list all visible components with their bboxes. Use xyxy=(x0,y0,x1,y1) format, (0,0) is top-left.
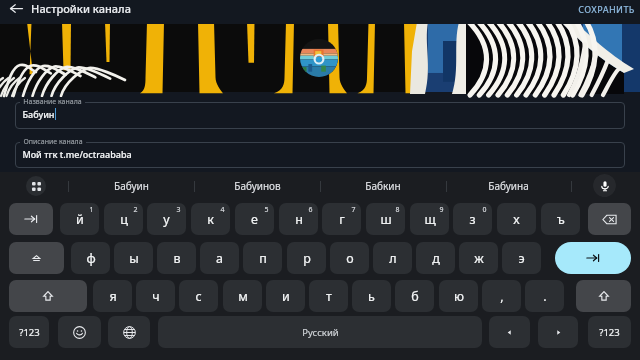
button[interactable]: Enter xyxy=(555,242,631,274)
button[interactable]: г xyxy=(322,203,361,235)
button[interactable]: Tab xyxy=(9,203,53,235)
staticText: д xyxy=(432,250,440,267)
staticText: к xyxy=(207,211,214,228)
staticText: Бабуина xyxy=(488,179,529,193)
button[interactable]: з xyxy=(453,203,492,235)
staticText: Описание канала xyxy=(23,137,83,147)
button[interactable]: ?123 xyxy=(9,316,49,348)
staticText: Бабкин xyxy=(365,179,401,193)
staticText: ь xyxy=(368,288,375,305)
button[interactable]: Change channel photo xyxy=(300,39,338,77)
button[interactable] xyxy=(15,142,625,168)
button[interactable]: с xyxy=(179,280,218,312)
button[interactable]: я xyxy=(93,280,132,312)
staticText: р xyxy=(303,250,311,267)
button[interactable]: х xyxy=(497,203,536,235)
button[interactable]: ь xyxy=(352,280,391,312)
button[interactable]: ы xyxy=(114,242,153,274)
staticText: Русский xyxy=(302,326,339,339)
button[interactable]: ж xyxy=(459,242,498,274)
staticText: з xyxy=(469,211,476,228)
staticText: с xyxy=(195,288,202,305)
staticText: н xyxy=(295,211,303,228)
button[interactable]: в xyxy=(157,242,196,274)
button[interactable]: . xyxy=(525,280,564,312)
button[interactable]: щ xyxy=(410,203,449,235)
button[interactable]: Shift xyxy=(576,280,631,312)
button[interactable]: ю xyxy=(439,280,478,312)
staticText: ч xyxy=(152,288,160,305)
button[interactable]: Бабуинов xyxy=(194,172,320,200)
staticText: Название канала xyxy=(23,97,82,107)
staticText: ю xyxy=(454,288,464,305)
button[interactable]: е xyxy=(235,203,274,235)
button[interactable]: СОХРАНИТЬ xyxy=(572,0,640,19)
staticText: СОХРАНИТЬ xyxy=(578,3,635,15)
button[interactable]: ч xyxy=(136,280,175,312)
button[interactable]: Emoji xyxy=(58,316,101,348)
staticText: 0 xyxy=(482,205,487,215)
button[interactable]: л xyxy=(373,242,412,274)
staticText: в xyxy=(173,250,181,267)
button[interactable]: Бабкин xyxy=(320,172,446,200)
staticText: Бабуинов xyxy=(234,179,281,193)
button[interactable]: Move cursor right xyxy=(538,316,578,348)
button[interactable]: Channel cover xyxy=(0,24,640,92)
staticText: е xyxy=(251,211,258,228)
button[interactable]: Voice input xyxy=(593,174,616,197)
button[interactable]: ъ xyxy=(541,203,580,235)
button[interactable]: ф xyxy=(71,242,110,274)
staticText: 3 xyxy=(176,205,181,215)
button[interactable]: ц xyxy=(104,203,143,235)
staticText: л xyxy=(389,250,397,267)
staticText: ж xyxy=(474,250,484,267)
staticText: ы xyxy=(129,250,139,267)
button[interactable]: б xyxy=(395,280,434,312)
button[interactable]: о xyxy=(330,242,369,274)
staticText: г xyxy=(339,211,345,228)
button[interactable]: к xyxy=(191,203,230,235)
staticText: 4 xyxy=(220,205,225,215)
button[interactable]: Бабуин xyxy=(68,172,194,200)
button[interactable] xyxy=(15,102,625,129)
button[interactable]: Switch language xyxy=(108,316,150,348)
button[interactable]: Clipboard xyxy=(25,175,47,197)
button[interactable]: й xyxy=(60,203,99,235)
button[interactable]: ?123 xyxy=(588,316,631,348)
staticText: б xyxy=(411,288,419,305)
staticText: , xyxy=(500,288,504,305)
button[interactable]: п xyxy=(243,242,282,274)
button[interactable]: а xyxy=(200,242,239,274)
staticText: 7 xyxy=(351,205,356,215)
button[interactable]: Backspace xyxy=(588,203,631,235)
button[interactable]: Русский xyxy=(158,316,482,348)
staticText: Бабуин xyxy=(22,108,55,120)
button[interactable]: э xyxy=(502,242,541,274)
button[interactable]: и xyxy=(266,280,305,312)
staticText: 6 xyxy=(308,205,313,215)
button[interactable]: н xyxy=(279,203,318,235)
button[interactable]: р xyxy=(287,242,326,274)
button[interactable]: у xyxy=(147,203,186,235)
staticText: 9 xyxy=(439,205,444,215)
staticText: х xyxy=(513,211,520,228)
staticText: ф xyxy=(86,250,96,267)
staticText: а xyxy=(216,250,223,267)
staticText: 1 xyxy=(89,205,94,215)
button[interactable]: ш xyxy=(366,203,405,235)
button[interactable]: м xyxy=(223,280,262,312)
button[interactable]: Shift xyxy=(9,280,87,312)
staticText: и xyxy=(282,288,290,305)
button[interactable]: д xyxy=(416,242,455,274)
button[interactable]: Бабуина xyxy=(446,172,571,200)
button[interactable]: Back xyxy=(4,0,29,20)
button[interactable]: Caps lock xyxy=(9,242,64,274)
button[interactable]: Move cursor left xyxy=(489,316,530,348)
staticText: т xyxy=(326,288,332,305)
staticText: ш xyxy=(380,211,392,228)
staticText: Бабуин xyxy=(114,179,149,193)
button[interactable]: , xyxy=(482,280,521,312)
staticText: Мой тгк t.me/octraababa xyxy=(22,148,132,160)
button[interactable]: т xyxy=(309,280,348,312)
staticText: я xyxy=(109,288,117,305)
